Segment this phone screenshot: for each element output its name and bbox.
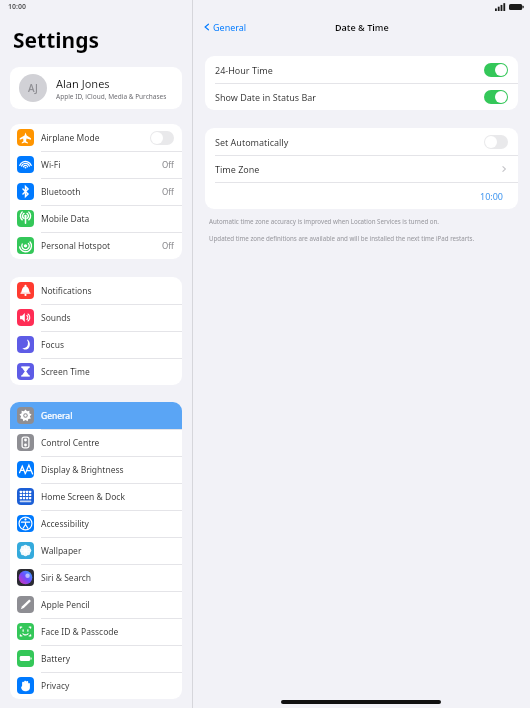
button[interactable]: Wi-Fi [10,151,182,178]
button[interactable]: Off [484,135,508,149]
button[interactable]: Airplane Mode [10,124,182,151]
staticText: 10:00 [480,190,504,202]
staticText: Show Date in Status Bar [215,91,317,103]
staticText: Off [162,186,174,197]
staticText: Display & Brightness [41,464,124,476]
button[interactable]: Control Centre [10,429,182,456]
staticText: Off [162,240,174,251]
staticText: Mobile Data [41,213,90,225]
staticText: Accessibility [41,518,89,530]
staticText: Battery [41,653,71,665]
staticText: General [213,21,247,33]
staticText: Wallpaper [41,545,82,557]
button[interactable]: On [484,63,508,77]
staticText: Notifications [41,285,92,297]
staticText: Face ID & Passcode [41,626,119,638]
button[interactable]: Apple Pencil [10,591,182,618]
staticText: Automatic time zone accuracy is improved… [209,217,440,225]
button[interactable]: Accessibility [10,510,182,537]
button[interactable]: 24-Hour Time [205,56,518,83]
button[interactable]: General [10,402,182,429]
staticText: AJ [28,81,38,95]
staticText: Time Zone [215,163,260,175]
button[interactable]: Bluetooth [10,178,182,205]
staticText: Apple Pencil [41,599,90,611]
button[interactable]: Battery [10,645,182,672]
staticText: Privacy [41,680,70,692]
staticText: Settings [13,26,100,55]
staticText: General [41,410,73,422]
button[interactable]: Face ID & Passcode [10,618,182,645]
staticText: Focus [41,339,64,351]
button[interactable]: Home Screen & Dock [10,483,182,510]
button[interactable]: Time Zone [205,155,518,182]
staticText: Apple ID, iCloud, Media & Purchases [56,92,167,101]
button[interactable]: Set Automatically [205,128,518,155]
staticText: 10:00 [8,2,26,12]
button[interactable]: Wallpaper [10,537,182,564]
button[interactable]: Siri & Search [10,564,182,591]
button[interactable]: General [193,19,253,35]
button[interactable]: On [484,90,508,104]
button[interactable]: Notifications [10,277,182,304]
staticText: Date & Time [335,21,389,33]
staticText: Screen Time [41,366,90,378]
button[interactable]: AJ [10,67,182,109]
staticText: Siri & Search [41,572,92,584]
button[interactable]: Sounds [10,304,182,331]
staticText: Updated time zone definitions are availa… [209,234,475,242]
staticText: Off [162,159,174,170]
other: Open [500,165,508,173]
staticText: Alan Jones [56,76,110,91]
button[interactable]: Display & Brightness [10,456,182,483]
button[interactable]: Off [150,131,174,145]
button[interactable]: Privacy [10,672,182,699]
button[interactable]: Personal Hotspot [10,232,182,259]
button[interactable]: Mobile Data [10,205,182,232]
staticText: Bluetooth [41,186,81,198]
button[interactable]: Screen Time [10,358,182,385]
staticText: Sounds [41,312,71,324]
staticText: Set Automatically [215,136,289,148]
staticText: Airplane Mode [41,132,100,144]
button[interactable]: Show Date in Status Bar [205,83,518,110]
staticText: Control Centre [41,437,100,449]
staticText: Home Screen & Dock [41,491,125,503]
staticText: 24-Hour Time [215,64,273,76]
staticText: Personal Hotspot [41,240,111,252]
button[interactable]: Focus [10,331,182,358]
staticText: Wi-Fi [41,159,61,171]
